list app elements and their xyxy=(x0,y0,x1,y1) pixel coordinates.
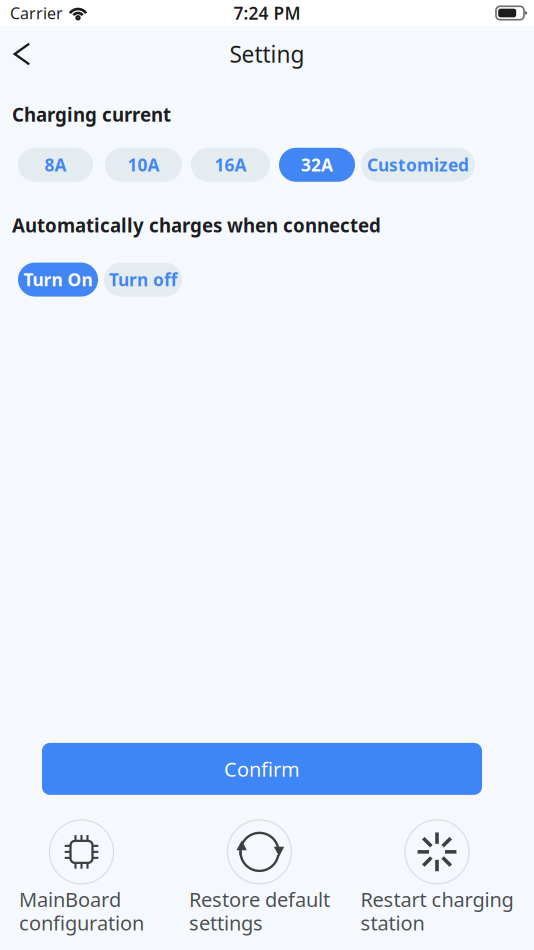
button[interactable]: Turn off xyxy=(104,263,182,297)
staticText: MainBoard configuration xyxy=(19,886,144,936)
button[interactable]: 16A xyxy=(191,148,270,182)
staticText: 7:24 PM xyxy=(233,1,300,24)
staticText: Automatically charges when connected xyxy=(12,213,381,238)
staticText: 16A xyxy=(214,153,246,176)
staticText: Restore default settings xyxy=(189,886,330,936)
button[interactable]: 32A xyxy=(279,148,355,182)
staticText: Customized xyxy=(367,153,469,176)
button[interactable]: Restart charging station xyxy=(356,820,518,936)
staticText: 8A xyxy=(44,153,66,176)
staticText: Carrier xyxy=(10,2,63,24)
staticText: Confirm xyxy=(224,756,300,782)
staticText: Setting xyxy=(229,39,304,69)
button[interactable]: Confirm xyxy=(42,743,482,795)
button[interactable]: Customized xyxy=(361,148,475,182)
staticText: Restart charging station xyxy=(360,886,513,936)
button[interactable]: Restore default settings xyxy=(163,820,356,936)
button[interactable]: Turn On xyxy=(18,263,98,297)
staticText: Charging current xyxy=(12,102,171,127)
staticText: 10A xyxy=(127,153,159,176)
button[interactable]: Back xyxy=(0,32,44,76)
staticText: Turn On xyxy=(23,268,92,291)
button[interactable]: MainBoard configuration xyxy=(0,820,163,936)
button[interactable]: 8A xyxy=(18,148,93,182)
staticText: 32A xyxy=(301,153,333,176)
staticText: Turn off xyxy=(109,268,177,291)
button[interactable]: 10A xyxy=(105,148,182,182)
